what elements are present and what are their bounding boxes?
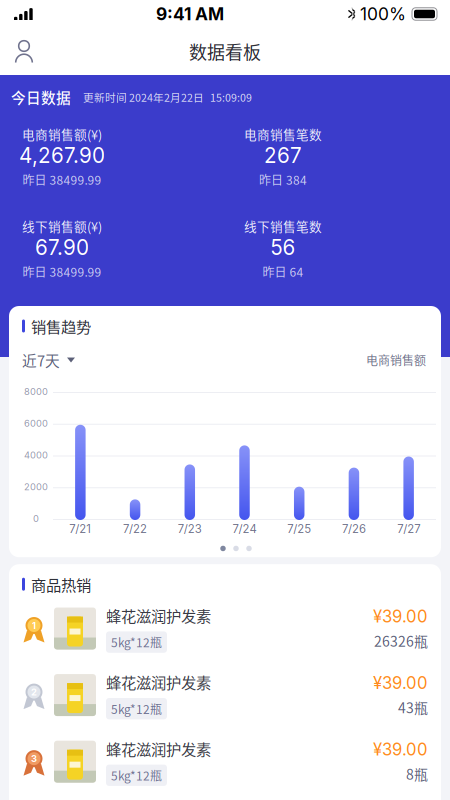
staticText: 26326瓶 xyxy=(374,630,428,651)
staticText: 9:41 AM xyxy=(156,3,224,24)
staticText: 蜂花滋润护发素 xyxy=(106,671,211,693)
staticText: 7/25 xyxy=(287,522,311,536)
staticText: 昨日 38499.99 xyxy=(22,171,101,188)
staticText: 销售趋势 xyxy=(31,315,91,337)
staticText: ¥39.00 xyxy=(373,739,428,760)
button[interactable]: 2 xyxy=(22,662,428,728)
staticText: 267 xyxy=(264,143,302,168)
staticText: 100% xyxy=(360,3,406,24)
staticText: 更新时间 2024年2月22日 15:09:09 xyxy=(83,89,252,105)
staticText: 数据看板 xyxy=(189,38,261,65)
staticText: 今日数据 xyxy=(11,86,71,108)
staticText: 4000 xyxy=(24,449,48,461)
staticText: 昨日 384 xyxy=(259,171,307,188)
staticText: ¥39.00 xyxy=(373,606,428,626)
staticText: 昨日 64 xyxy=(262,263,303,280)
staticText: 1 xyxy=(32,620,36,631)
staticText: 43瓶 xyxy=(398,697,428,717)
staticText: 线下销售笔数 xyxy=(244,217,322,235)
staticText: 8瓶 xyxy=(406,764,428,784)
staticText: 电商销售额(¥) xyxy=(22,125,102,143)
button[interactable]: 3 xyxy=(22,728,428,795)
staticText: 蜂花滋润护发素 xyxy=(106,604,211,626)
button[interactable]: 1 xyxy=(22,595,428,662)
staticText: 7/22 xyxy=(123,522,147,536)
staticText: 0 xyxy=(33,513,39,524)
staticText: 7/27 xyxy=(397,522,420,536)
staticText: 5kg*12瓶 xyxy=(111,767,162,784)
staticText: 7/23 xyxy=(178,522,202,536)
staticText: 线下销售额(¥) xyxy=(22,217,102,235)
staticText: ¥39.00 xyxy=(373,673,428,693)
staticText: 6000 xyxy=(24,418,48,429)
staticText: 2000 xyxy=(24,481,48,492)
staticText: 电商销售笔数 xyxy=(244,125,322,143)
staticText: 蜂花滋润护发素 xyxy=(106,737,211,760)
staticText: 8000 xyxy=(24,386,48,397)
staticText: 近7天 xyxy=(22,349,60,371)
staticText: 5kg*12瓶 xyxy=(111,633,162,651)
staticText: 7/21 xyxy=(69,522,91,536)
button[interactable]: 个人中心 xyxy=(0,30,44,72)
staticText: 商品热销 xyxy=(31,573,91,595)
staticText: 3 xyxy=(31,753,37,764)
staticText: 67.90 xyxy=(35,235,89,260)
staticText: 电商销售额 xyxy=(366,351,426,369)
staticText: 7/26 xyxy=(342,522,366,536)
staticText: 2 xyxy=(31,686,37,698)
staticText: 4,267.90 xyxy=(19,143,105,168)
staticText: 5kg*12瓶 xyxy=(111,700,162,717)
button[interactable]: 近7天 xyxy=(22,349,75,371)
staticText: 56 xyxy=(270,235,295,260)
staticText: 昨日 38499.99 xyxy=(22,263,101,280)
staticText: 7/24 xyxy=(232,522,256,536)
